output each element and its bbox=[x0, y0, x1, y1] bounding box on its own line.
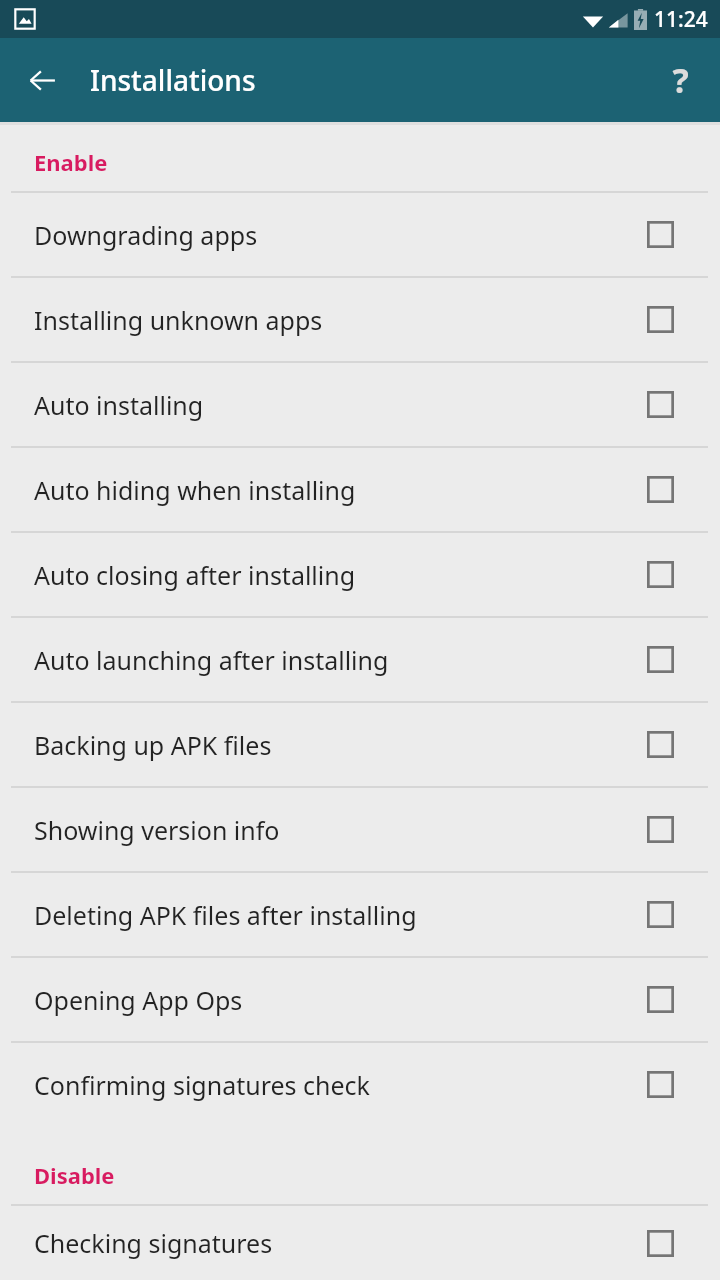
button[interactable]: Back bbox=[8, 46, 76, 114]
button[interactable]: Deleting APK files after installing bbox=[0, 873, 720, 956]
staticText: 11:24 bbox=[654, 5, 708, 34]
staticText: Disable bbox=[34, 1160, 115, 1190]
staticText: Checking signatures bbox=[34, 1226, 647, 1260]
button[interactable]: Downgrading apps bbox=[0, 193, 720, 276]
staticText: Installations bbox=[90, 61, 256, 99]
staticText: Downgrading apps bbox=[34, 218, 647, 252]
staticText: Showing version info bbox=[34, 813, 647, 847]
button[interactable]: Showing version info bbox=[0, 788, 720, 871]
button[interactable]: Help bbox=[648, 48, 712, 112]
button[interactable]: Auto launching after installing bbox=[0, 618, 720, 701]
staticText: Auto hiding when installing bbox=[34, 473, 647, 507]
button[interactable]: Auto closing after installing bbox=[0, 533, 720, 616]
button[interactable]: Auto installing bbox=[0, 363, 720, 446]
staticText: Auto launching after installing bbox=[34, 643, 647, 677]
button[interactable]: Confirming signatures check bbox=[0, 1043, 720, 1126]
staticText: Auto closing after installing bbox=[34, 558, 647, 592]
button[interactable]: Installing unknown apps bbox=[0, 278, 720, 361]
staticText: Confirming signatures check bbox=[34, 1068, 647, 1102]
staticText: Enable bbox=[34, 147, 108, 177]
staticText: Installing unknown apps bbox=[34, 303, 647, 337]
button[interactable]: Opening App Ops bbox=[0, 958, 720, 1041]
staticText: Auto installing bbox=[34, 388, 647, 422]
staticText: Opening App Ops bbox=[34, 983, 647, 1017]
staticText: ? bbox=[672, 57, 689, 103]
button[interactable]: Auto hiding when installing bbox=[0, 448, 720, 531]
button[interactable]: Checking signatures bbox=[0, 1206, 720, 1280]
staticText: Deleting APK files after installing bbox=[34, 898, 647, 932]
button[interactable]: Backing up APK files bbox=[0, 703, 720, 786]
staticText: Backing up APK files bbox=[34, 728, 647, 762]
